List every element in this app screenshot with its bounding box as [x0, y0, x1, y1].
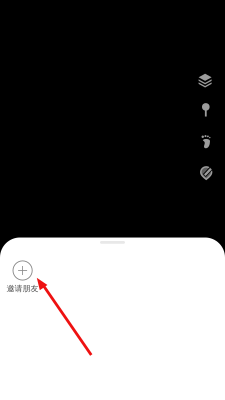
button[interactable]: Drop pin	[192, 96, 220, 124]
button[interactable]: 邀请朋友	[1, 257, 45, 297]
button[interactable]: Edit location	[193, 159, 221, 187]
staticText: 邀请朋友	[7, 284, 39, 293]
button[interactable]: Map layers	[192, 66, 220, 94]
button[interactable]: Footprints	[192, 128, 220, 156]
